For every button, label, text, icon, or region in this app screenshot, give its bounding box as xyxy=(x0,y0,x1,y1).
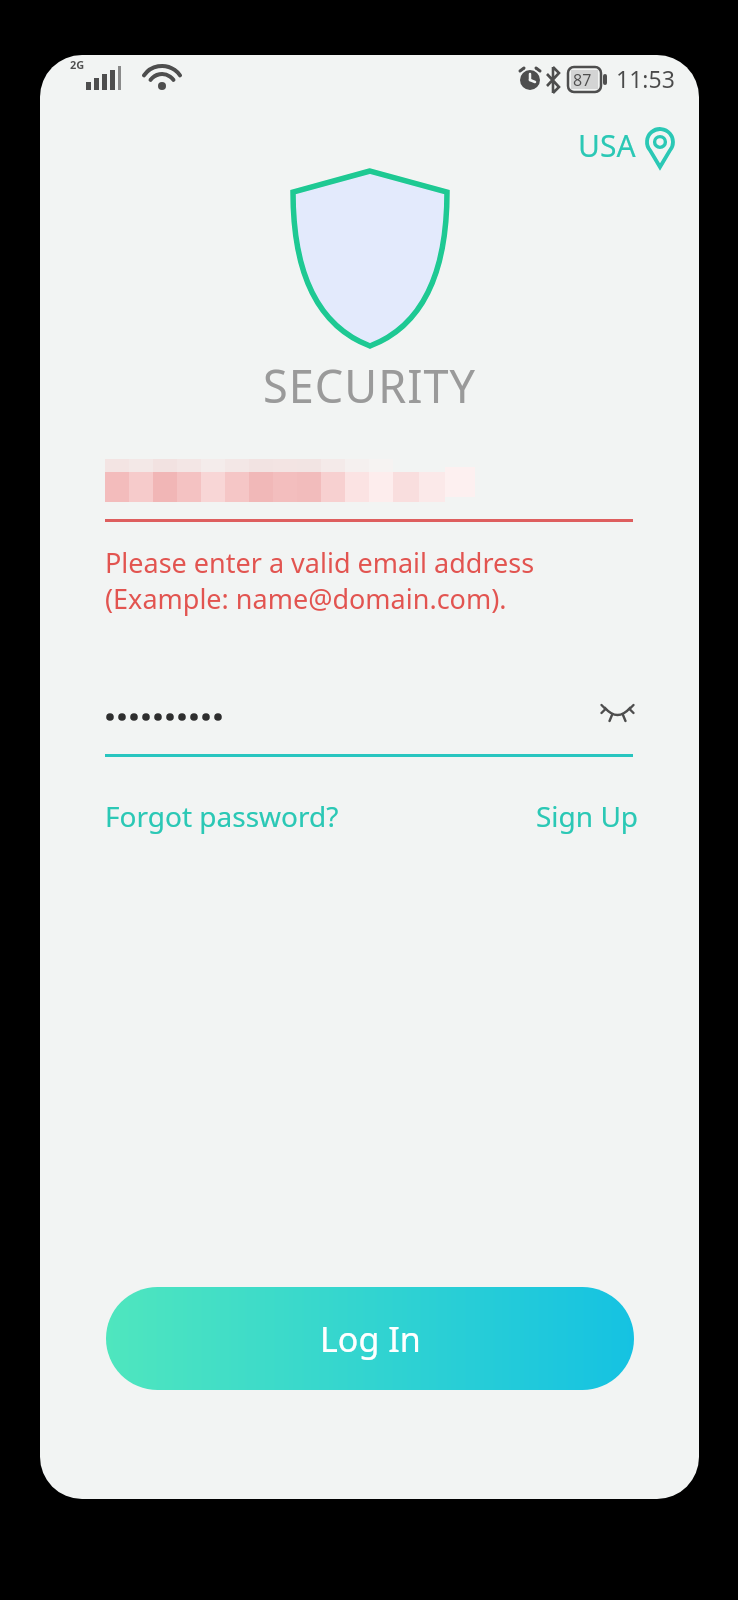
staticText: 87 xyxy=(573,69,592,91)
button[interactable]: Sign Up xyxy=(518,790,640,838)
staticText: 2G xyxy=(70,57,85,72)
staticText: USA xyxy=(578,125,636,166)
staticText: 11:53 xyxy=(616,63,675,94)
staticText: Please enter a valid email address (Exam… xyxy=(105,544,535,617)
staticText: SECURITY xyxy=(40,355,699,416)
button[interactable]: Log In xyxy=(106,1287,634,1390)
staticText: Forgot password? xyxy=(105,797,339,835)
staticText: Sign Up xyxy=(536,797,639,835)
button[interactable]: USA xyxy=(568,119,680,169)
staticText: Log In xyxy=(320,1316,421,1362)
button[interactable]: Forgot password? xyxy=(100,790,400,840)
